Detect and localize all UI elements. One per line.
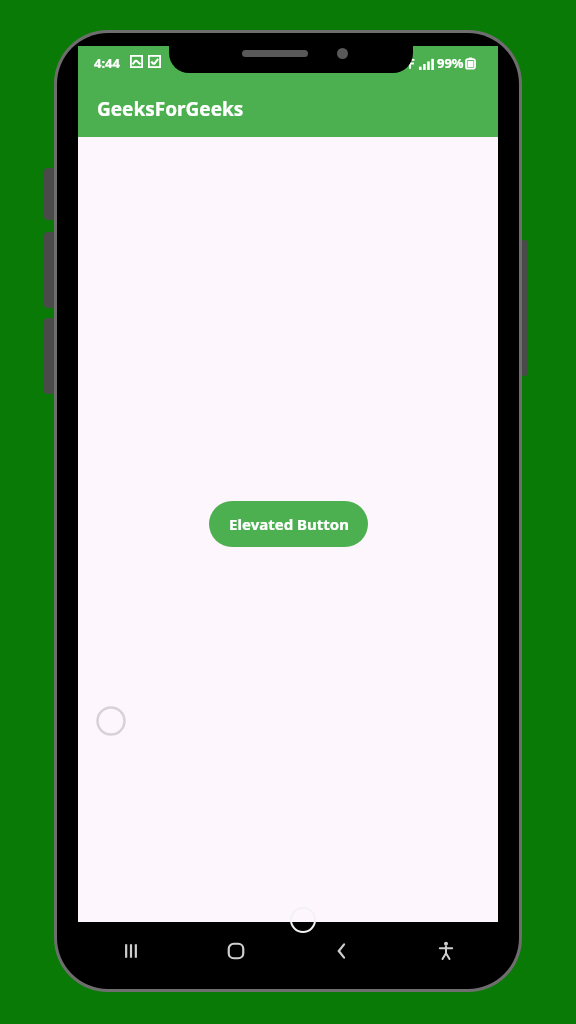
- staticText: 99%: [437, 54, 464, 72]
- button[interactable]: Accessibility: [393, 922, 498, 980]
- button[interactable]: Elevated Button: [209, 501, 368, 547]
- button[interactable]: Recents: [78, 922, 183, 980]
- button[interactable]: Home: [183, 922, 288, 980]
- staticText: 4:44: [94, 54, 120, 72]
- staticText: GeeksForGeeks: [97, 96, 244, 122]
- staticText: Elevated Button: [229, 514, 349, 534]
- button[interactable]: Back: [288, 922, 393, 980]
